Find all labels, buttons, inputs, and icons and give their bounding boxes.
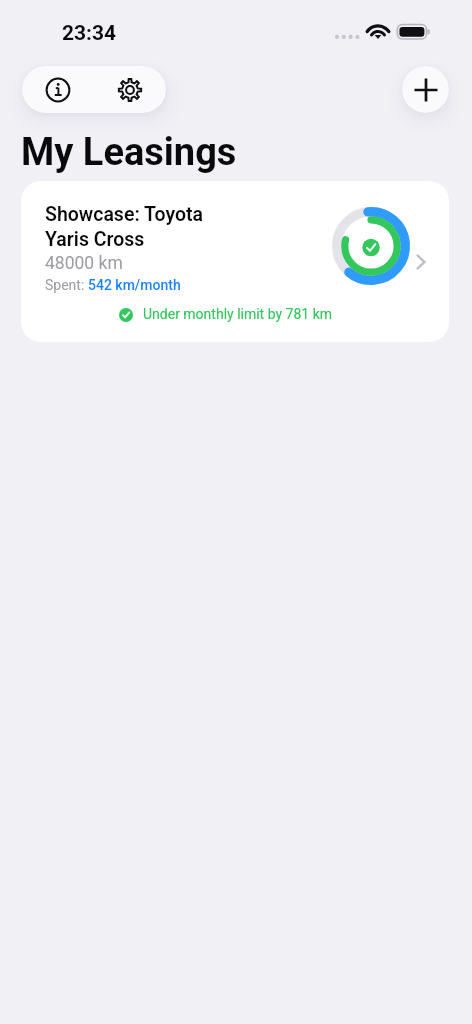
staticText: Spent: — [45, 277, 88, 293]
staticText: 23:34 — [62, 21, 117, 46]
staticText: Yaris Cross — [45, 228, 145, 251]
button[interactable]: Settings — [94, 66, 166, 113]
button[interactable]: Info — [22, 66, 94, 113]
staticText: 542 km/month — [88, 277, 181, 293]
button[interactable]: Showcase: Toyota — [21, 181, 449, 342]
button[interactable]: Add leasing — [402, 66, 449, 113]
staticText: Showcase: Toyota — [45, 203, 204, 226]
staticText: Under monthly limit by 781 km — [143, 306, 333, 322]
staticText: 48000 km — [45, 253, 123, 274]
staticText: My Leasings — [21, 130, 237, 175]
